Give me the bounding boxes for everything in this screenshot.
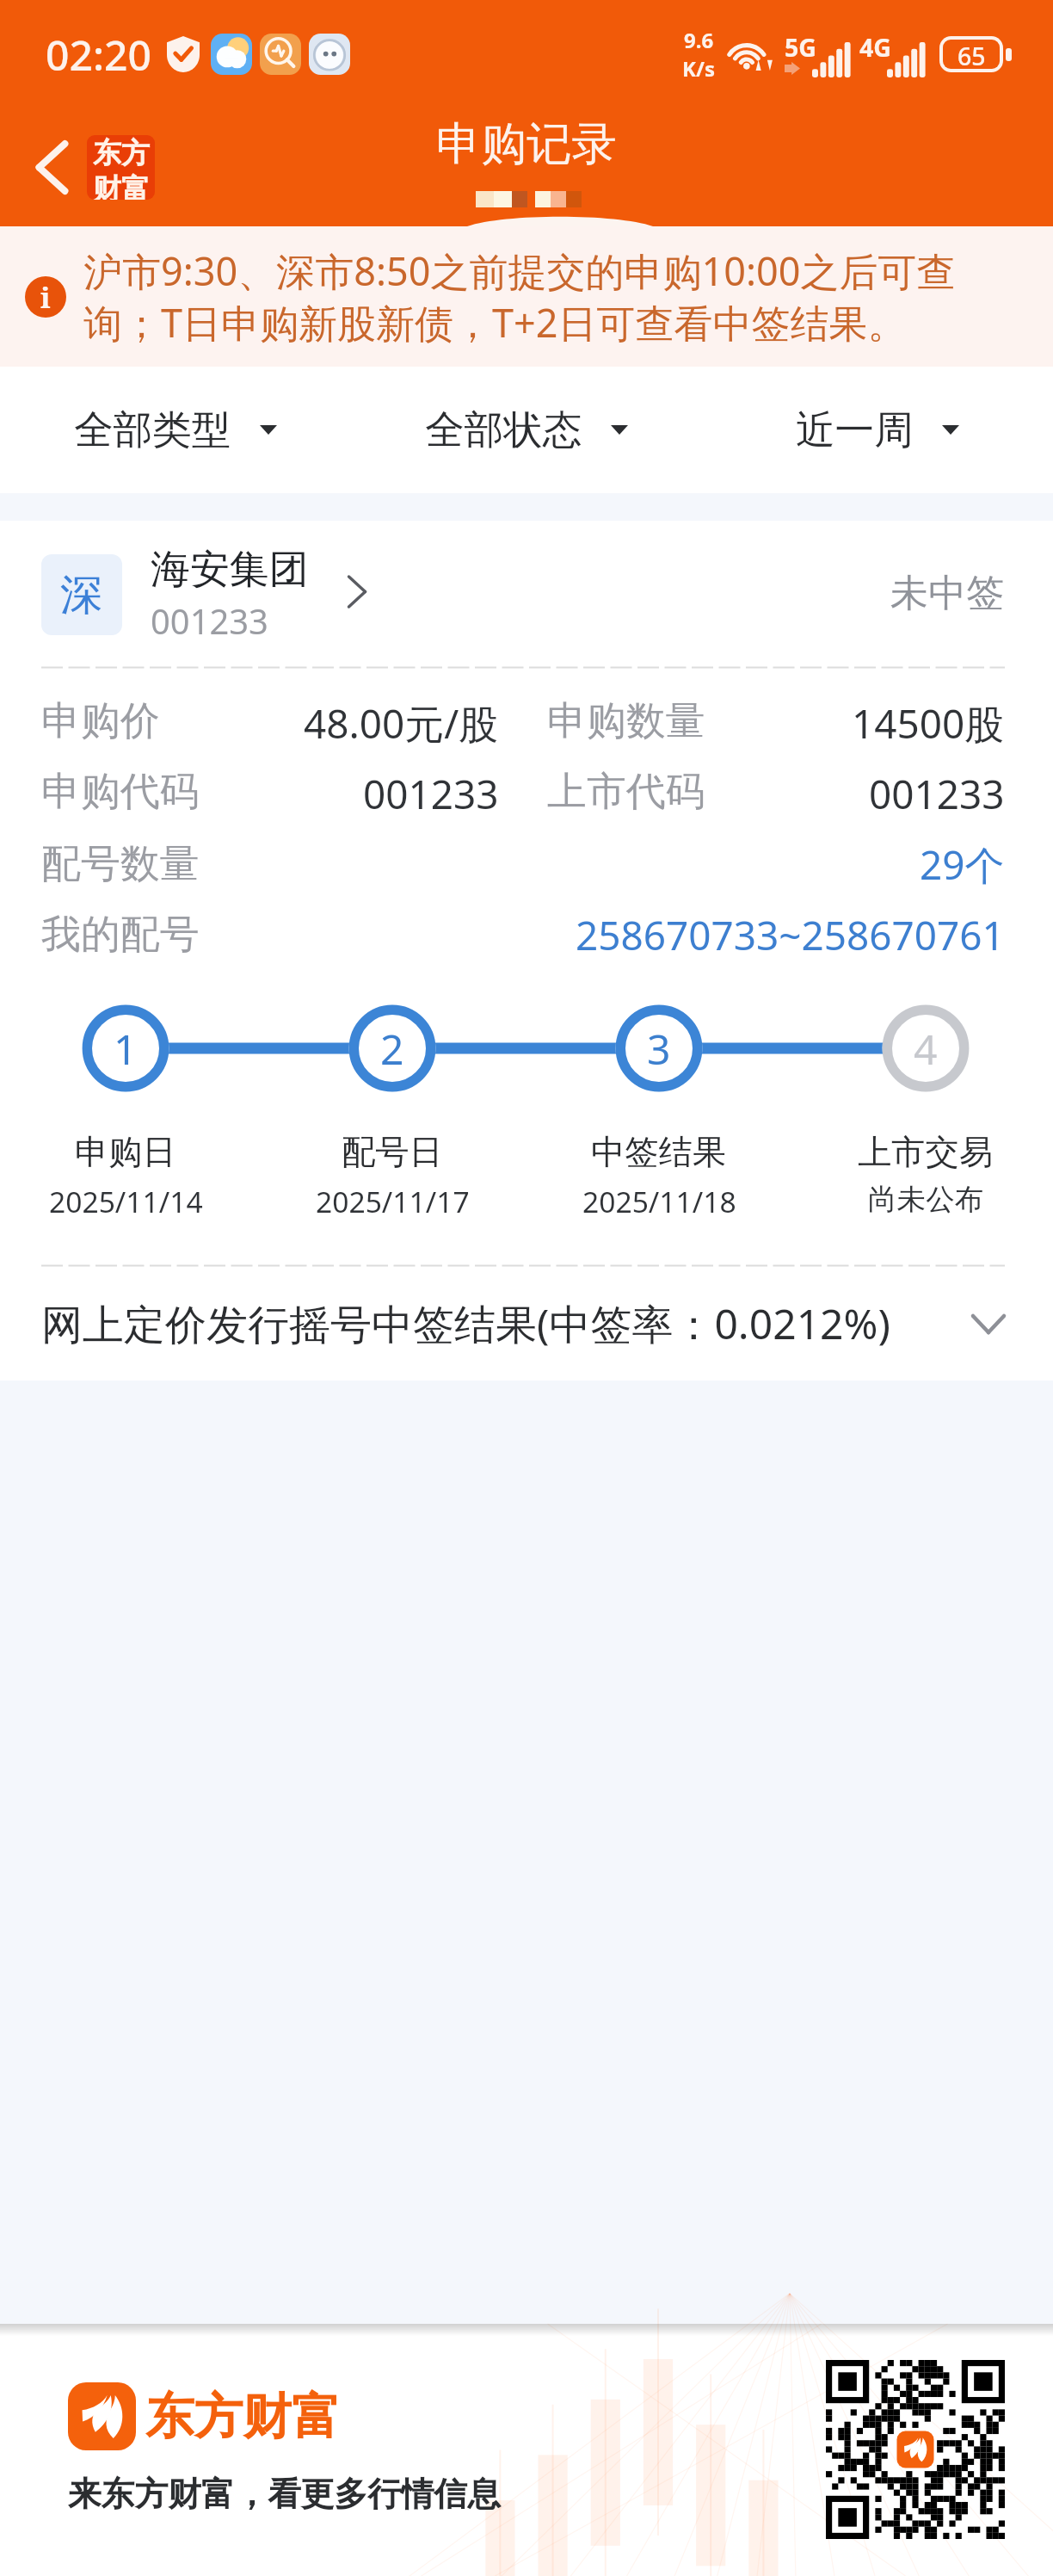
staticText: 1: [114, 1021, 138, 1077]
button[interactable]: Back: [0, 108, 175, 226]
staticText: 东方: [93, 135, 150, 171]
staticText: 4G: [859, 31, 891, 65]
staticText: 海安集团: [151, 545, 309, 595]
staticText: 2025/11/18: [582, 1182, 736, 1221]
staticText: 29个: [920, 837, 1005, 892]
staticText: 上市代码: [547, 767, 705, 817]
staticText: 2025/11/14: [49, 1182, 203, 1221]
staticText: 48.00元/股: [304, 696, 499, 751]
staticText: 65: [958, 40, 986, 69]
staticText: 258670733~258670761: [576, 908, 1005, 962]
staticText: 3: [647, 1021, 671, 1077]
staticText: 配号日: [342, 1131, 443, 1174]
button[interactable]: 全部类型: [0, 367, 351, 493]
staticText: 我的配号: [41, 910, 200, 960]
staticText: 02:20: [46, 27, 151, 83]
staticText: 申购价: [41, 696, 160, 746]
button[interactable]: 网上定价发行摇号中签结果(中签率：0.0212%): [41, 1267, 1005, 1381]
staticText: 2: [380, 1021, 404, 1077]
button[interactable]: 深: [41, 523, 1005, 666]
staticText: 未中签: [890, 570, 1005, 618]
staticText: 14500股: [852, 696, 1005, 751]
staticText: 申购记录: [436, 115, 617, 172]
staticText: 东方财富: [145, 2386, 341, 2447]
staticText: 来东方财富，看更多行情信息: [68, 2474, 501, 2516]
staticText: 5G: [785, 31, 816, 65]
staticText: 配号数量: [41, 839, 200, 889]
staticText: 申购日: [75, 1131, 176, 1174]
staticText: 中签结果: [591, 1131, 727, 1174]
staticText: 001233: [869, 767, 1005, 821]
staticText: 001233: [363, 767, 499, 821]
staticText: 上市交易: [858, 1131, 994, 1174]
staticText: 全部类型: [74, 405, 231, 454]
button[interactable]: 全部状态: [351, 367, 702, 493]
button[interactable]: 近一周: [702, 367, 1053, 493]
staticText: 9.6: [684, 26, 714, 54]
staticText: 深: [60, 568, 103, 621]
staticText: 申购数量: [547, 696, 705, 746]
staticText: 尚未公布: [868, 1182, 984, 1218]
staticText: i: [40, 278, 51, 317]
staticText: K/s: [682, 54, 715, 83]
staticText: 沪市9:30、深市8:50之前提交的申购10:00之后可查询；T日申购新股新债，…: [83, 244, 964, 349]
staticText: 4: [914, 1021, 938, 1077]
staticText: 网上定价发行摇号中签结果(中签率：0.0212%): [41, 1295, 890, 1352]
staticText: 001233: [151, 597, 268, 644]
staticText: 财富: [93, 171, 150, 200]
staticText: 全部状态: [425, 405, 582, 454]
staticText: 2025/11/17: [316, 1182, 470, 1221]
staticText: 申购代码: [41, 767, 200, 817]
staticText: 近一周: [796, 405, 914, 454]
